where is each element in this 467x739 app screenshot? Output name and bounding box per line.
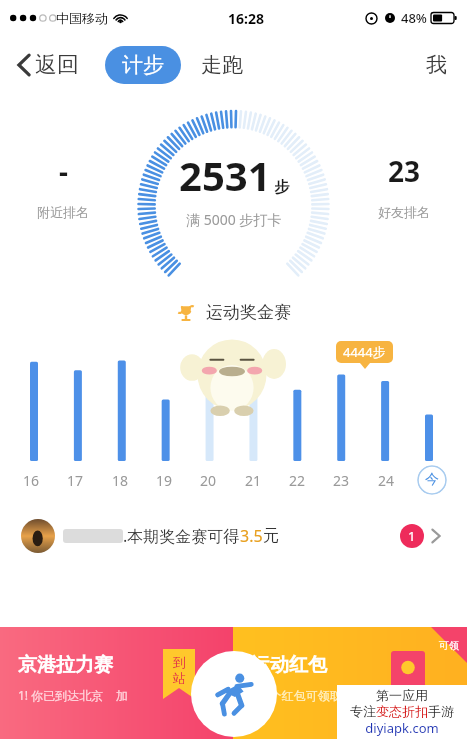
staticText: 1! 你已到达北京 加 [18,687,128,703]
staticText: 16:28 [228,9,264,28]
staticText: 满 5000 步打卡 [186,210,282,229]
staticText: 步 [274,178,289,197]
staticText: 返回 [35,51,79,79]
button[interactable]: 今 [417,465,447,495]
staticText: 附近排名 [37,204,89,220]
staticText: 变态折扣 [376,703,428,719]
button[interactable]: 运动奖金赛 [158,296,309,329]
staticText: 到 [173,654,186,670]
staticText: - [59,152,68,190]
staticText: 手游 [428,703,454,719]
staticText: 2531 [179,148,271,202]
button[interactable]: .本期奖金赛可得 [14,513,453,559]
staticText: 19 [156,471,173,490]
staticText: 有1个红包可领取 [251,687,342,703]
button[interactable]: 计步 [105,46,181,84]
staticText: diyiapk.com [365,719,439,737]
staticText: .本期奖金赛可得 [123,525,240,547]
staticText: 站 [173,670,186,686]
button[interactable]: Start run [191,651,277,737]
staticText: 京港拉力赛 [18,653,113,677]
staticText: 23 [333,471,350,490]
staticText: 17 [67,471,84,490]
staticText: 20 [200,471,217,490]
button[interactable]: 我 [418,46,455,84]
staticText: 元 [263,526,279,546]
staticText: 好友排名 [378,204,430,220]
staticText: 24 [378,471,395,490]
staticText: 3.5 [240,525,263,547]
staticText: 1 [408,527,416,545]
button[interactable]: 返回 [12,45,83,85]
staticText: 专注 [350,703,376,719]
staticText: 中国移动 [56,10,108,26]
button[interactable]: 京港拉力赛 [0,627,233,739]
staticText: 18 [112,471,129,490]
staticText: 23 [388,152,421,190]
staticText: 第一应用 [376,687,428,703]
staticText: 16 [23,471,40,490]
staticText: 4444步 [343,343,386,361]
button[interactable]: 走跑 [195,46,249,84]
staticText: 可领 [439,639,459,652]
staticText: 计步 [122,52,164,78]
button[interactable]: 运动红包 [233,627,467,739]
staticText: 运动红包 [251,653,327,677]
staticText: 48% [401,9,427,27]
staticText: 走跑 [201,52,243,78]
staticText: 今 [425,471,439,489]
staticText: 22 [289,471,306,490]
staticText: 我 [426,52,447,78]
staticText: 21 [245,471,262,490]
staticText: 运动奖金赛 [206,302,291,323]
